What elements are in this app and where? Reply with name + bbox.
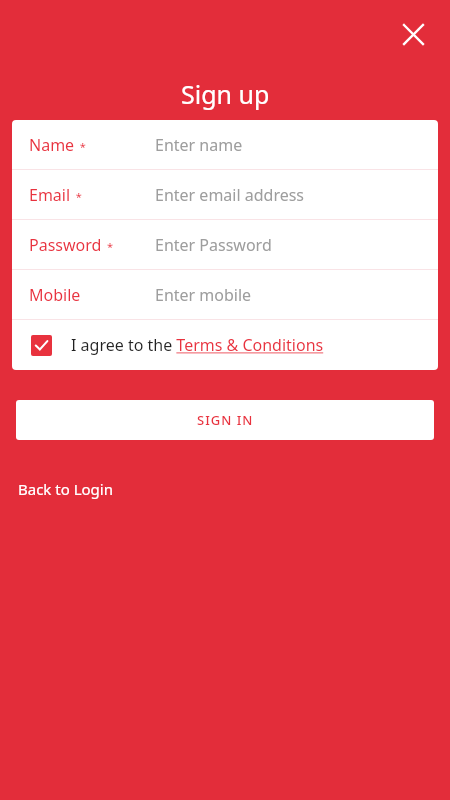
staticText: Back to Login [18,479,113,499]
staticText: Enter Password [155,234,272,256]
button[interactable]: Name * [12,120,438,170]
staticText: Enter mobile [155,284,252,306]
button[interactable]: Close [393,14,433,54]
staticText: Password * [29,234,114,256]
staticText: Enter email address [155,184,305,206]
button[interactable]: SIGN IN [16,400,434,440]
button[interactable]: Back to Login [18,477,113,501]
staticText: Mobile [29,284,81,306]
button[interactable]: I agree to the Terms & Conditions [12,320,438,370]
button[interactable]: Email * [12,170,438,220]
staticText: SIGN IN [197,411,254,429]
staticText: Sign up [181,77,270,111]
staticText: Name * [29,134,86,156]
staticText: I agree to the Terms & Conditions [71,334,324,356]
button[interactable]: Mobile [12,270,438,320]
staticText: Email * [29,184,82,206]
staticText: Enter name [155,134,243,156]
button[interactable]: Password * [12,220,438,270]
